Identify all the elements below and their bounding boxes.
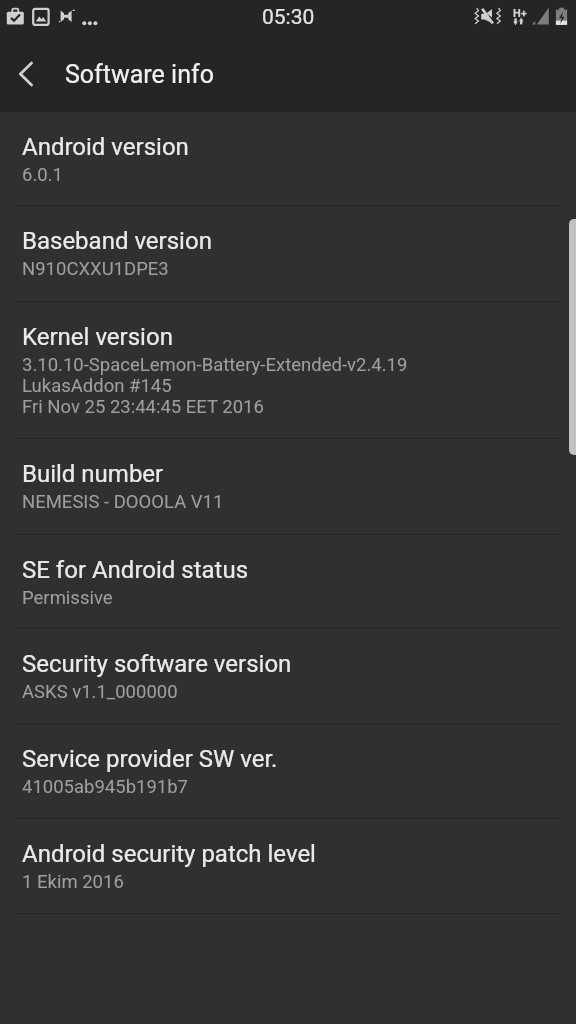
button[interactable]: Security software version <box>0 629 576 723</box>
staticText: Permissive <box>22 587 113 608</box>
staticText: Android version <box>22 133 189 164</box>
button[interactable]: Service provider SW ver. <box>0 724 576 818</box>
staticText: LukasAddon #145 <box>22 375 172 396</box>
staticText: 1 Ekim 2016 <box>22 871 124 892</box>
staticText: Baseband version <box>22 227 212 258</box>
button[interactable]: SE for Android status <box>0 535 576 628</box>
staticText: N910CXXU1DPE3 <box>22 258 169 279</box>
button[interactable]: Kernel version <box>0 302 576 438</box>
button[interactable]: Navigate up <box>0 36 52 112</box>
staticText: SE for Android status <box>22 556 249 587</box>
staticText: Security software version <box>22 650 292 681</box>
button[interactable]: Baseband version <box>0 206 576 301</box>
staticText: NEMESIS - DOOOLA V11 <box>22 491 224 512</box>
button[interactable]: Android version <box>0 112 576 205</box>
staticText: ASKS v1.1_000000 <box>22 681 178 702</box>
button[interactable]: Build number <box>0 439 576 534</box>
staticText: Kernel version <box>22 323 173 354</box>
staticText: Service provider SW ver. <box>22 745 278 776</box>
staticText: Software info <box>65 60 214 89</box>
staticText: Build number <box>22 460 164 491</box>
button[interactable]: Android security patch level <box>0 819 576 913</box>
staticText: 6.0.1 <box>22 164 63 185</box>
staticText: 41005ab945b191b7 <box>22 776 188 797</box>
staticText: 3.10.10-SpaceLemon-Battery-Extended-v2.4… <box>22 354 408 375</box>
staticText: H+ <box>513 7 527 20</box>
staticText: Android security patch level <box>22 840 316 871</box>
staticText: Fri Nov 25 23:44:45 EET 2016 <box>22 396 264 417</box>
staticText: 05:30 <box>262 5 315 30</box>
